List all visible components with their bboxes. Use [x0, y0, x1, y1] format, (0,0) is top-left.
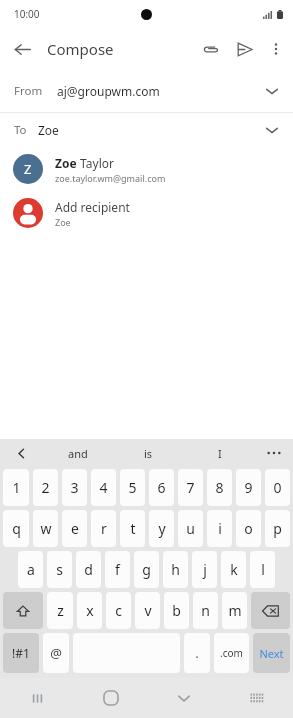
button[interactable]: Send — [227, 32, 261, 66]
button[interactable]: Attach file — [193, 32, 227, 66]
button[interactable]: To — [0, 113, 293, 147]
button[interactable]: Symbols — [3, 633, 39, 673]
button[interactable]: .com — [214, 633, 249, 673]
button[interactable]: o — [236, 510, 261, 547]
button[interactable]: I — [184, 439, 255, 467]
staticText: y — [158, 519, 166, 538]
staticText: . — [195, 644, 199, 662]
staticText: f — [115, 560, 120, 579]
staticText: is — [144, 446, 153, 461]
button[interactable]: v — [135, 592, 160, 629]
button[interactable]: j — [192, 551, 217, 588]
button[interactable]: y — [149, 510, 174, 547]
button[interactable]: s — [47, 551, 72, 588]
staticText: 1 — [12, 478, 21, 497]
button[interactable]: a — [18, 551, 43, 588]
button[interactable]: 2 — [33, 469, 58, 506]
button[interactable]: Add recipient — [0, 191, 293, 235]
staticText: Compose — [47, 39, 114, 59]
staticText: l — [261, 560, 265, 579]
staticText: c — [115, 601, 122, 620]
button[interactable]: Z — [0, 147, 293, 191]
button[interactable]: g — [134, 551, 159, 588]
staticText: j — [203, 560, 207, 579]
staticText: r — [101, 519, 107, 538]
staticText: Next — [259, 646, 284, 661]
button[interactable]: i — [207, 510, 232, 547]
staticText: zoe.taylor.wm@gmail.com — [55, 172, 166, 184]
button[interactable]: 8 — [207, 469, 232, 506]
staticText: and — [68, 446, 88, 461]
button[interactable]: c — [106, 592, 131, 629]
button[interactable]: l — [250, 551, 275, 588]
staticText: 4 — [99, 478, 108, 497]
staticText: b — [172, 601, 181, 620]
button[interactable]: r — [91, 510, 116, 547]
staticText: m — [228, 601, 242, 620]
staticText: Z — [24, 160, 32, 178]
button[interactable]: 9 — [236, 469, 261, 506]
staticText: 8 — [215, 478, 224, 497]
button[interactable]: q — [3, 510, 29, 547]
button[interactable]: u — [178, 510, 203, 547]
button[interactable]: Home — [74, 678, 147, 718]
button[interactable]: p — [265, 510, 290, 547]
staticText: 6 — [157, 478, 166, 497]
staticText: u — [186, 519, 195, 538]
button[interactable]: x — [77, 592, 102, 629]
button[interactable]: f — [105, 551, 130, 588]
button[interactable]: From — [0, 70, 293, 112]
staticText: t — [130, 519, 136, 538]
button[interactable]: Recents — [0, 678, 74, 718]
staticText: z — [57, 601, 64, 620]
button[interactable]: @ — [43, 633, 69, 673]
button[interactable]: 6 — [149, 469, 174, 506]
staticText: x — [86, 601, 94, 620]
button[interactable]: 4 — [91, 469, 116, 506]
button[interactable]: More options — [261, 34, 291, 64]
staticText: s — [56, 560, 63, 579]
button[interactable]: 5 — [120, 469, 145, 506]
button[interactable]: e — [62, 510, 87, 547]
staticText: w — [40, 519, 52, 538]
staticText: v — [144, 601, 152, 620]
staticText: Add recipient — [55, 199, 130, 215]
button[interactable]: . — [184, 633, 210, 673]
staticText: I — [218, 446, 222, 461]
button[interactable]: 3 — [62, 469, 87, 506]
staticText: 0 — [273, 478, 282, 497]
button[interactable]: Shift — [3, 592, 43, 629]
button[interactable]: 0 — [265, 469, 290, 506]
staticText: k — [230, 560, 238, 579]
button[interactable]: n — [193, 592, 218, 629]
staticText: a — [27, 560, 35, 579]
button[interactable]: t — [120, 510, 145, 547]
staticText: Zoe — [55, 155, 77, 171]
staticText: 7 — [186, 478, 195, 497]
button[interactable]: is — [113, 439, 184, 467]
button[interactable]: 1 — [3, 469, 29, 506]
button[interactable]: Change keyboard — [220, 678, 293, 718]
staticText: 5 — [128, 478, 137, 497]
button[interactable]: Back — [6, 33, 38, 65]
button[interactable]: z — [47, 592, 73, 629]
button[interactable]: m — [222, 592, 247, 629]
button[interactable]: 7 — [178, 469, 203, 506]
staticText: 3 — [70, 478, 79, 497]
staticText: 2 — [41, 478, 50, 497]
button[interactable]: More suggestions — [255, 439, 293, 467]
staticText: q — [12, 519, 21, 538]
button[interactable]: w — [33, 510, 58, 547]
button[interactable]: h — [163, 551, 188, 588]
staticText: .com — [220, 646, 243, 660]
button[interactable]: Next — [253, 633, 290, 673]
staticText: Zoe — [38, 122, 59, 138]
button[interactable]: b — [164, 592, 189, 629]
button[interactable]: Backspace — [251, 592, 290, 629]
button[interactable]: Previous suggestions — [0, 439, 42, 467]
button[interactable]: k — [221, 551, 246, 588]
button[interactable]: Hide keyboard — [147, 678, 220, 718]
button[interactable]: d — [76, 551, 101, 588]
button[interactable]: and — [42, 439, 113, 467]
